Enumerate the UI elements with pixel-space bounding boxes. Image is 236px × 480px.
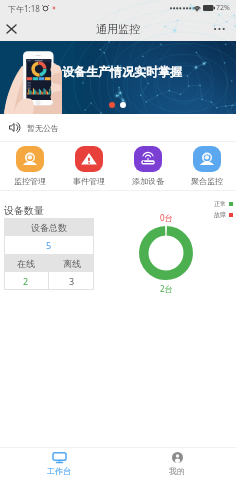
button[interactable]: 暂无公告 <box>0 114 236 141</box>
staticText: 设备总数 <box>31 222 67 233</box>
staticText: 聚合监控 <box>191 176 223 186</box>
staticText: 下午1:18 <box>8 3 40 14</box>
button[interactable]: More options <box>207 17 231 41</box>
staticText: 监控管理 <box>14 176 46 186</box>
staticText: 在线 <box>17 258 35 269</box>
button[interactable]: 工作台 <box>0 448 118 480</box>
staticText: 正常 <box>214 200 226 208</box>
staticText: 离线 <box>63 258 81 269</box>
staticText: 设备生产情况实时掌握 <box>62 64 182 79</box>
button[interactable]: 监控管理 <box>0 142 59 190</box>
staticText: 设备数量 <box>4 204 44 217</box>
staticText: 72% <box>216 3 230 13</box>
staticText: 0台 <box>160 212 173 223</box>
staticText: 故障 <box>214 211 226 219</box>
staticText: 暂无公告 <box>27 123 59 133</box>
button[interactable]: 添加设备 <box>118 142 177 190</box>
staticText: 2台 <box>160 283 173 294</box>
staticText: 事件管理 <box>73 176 105 186</box>
staticText: 5 <box>46 239 52 251</box>
staticText: 添加设备 <box>132 176 164 186</box>
button[interactable]: 我的 <box>118 448 236 480</box>
button[interactable]: 事件管理 <box>59 142 118 190</box>
staticText: 3 <box>69 275 75 287</box>
staticText: 工作台 <box>47 466 71 476</box>
staticText: 通用监控 <box>96 22 140 36</box>
button[interactable]: Close <box>0 17 23 40</box>
staticText: 我的 <box>169 466 185 476</box>
button[interactable]: 聚合监控 <box>177 142 236 190</box>
staticText: 2 <box>23 275 29 287</box>
